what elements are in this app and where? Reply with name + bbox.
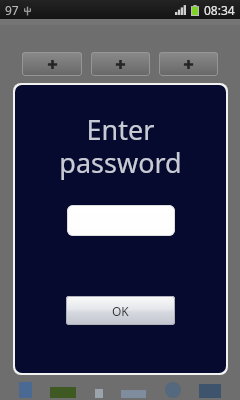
- staticText: Enter password: [59, 111, 182, 181]
- button[interactable]: Add: [91, 52, 150, 76]
- staticText: 97: [5, 2, 19, 18]
- button[interactable]: Add: [22, 52, 82, 76]
- button[interactable]: App: [165, 382, 181, 398]
- button[interactable]: [67, 205, 175, 236]
- button[interactable]: Add: [159, 52, 218, 76]
- staticText: 08:34: [204, 2, 235, 18]
- button[interactable]: OK: [66, 296, 175, 325]
- staticText: OK: [112, 303, 129, 319]
